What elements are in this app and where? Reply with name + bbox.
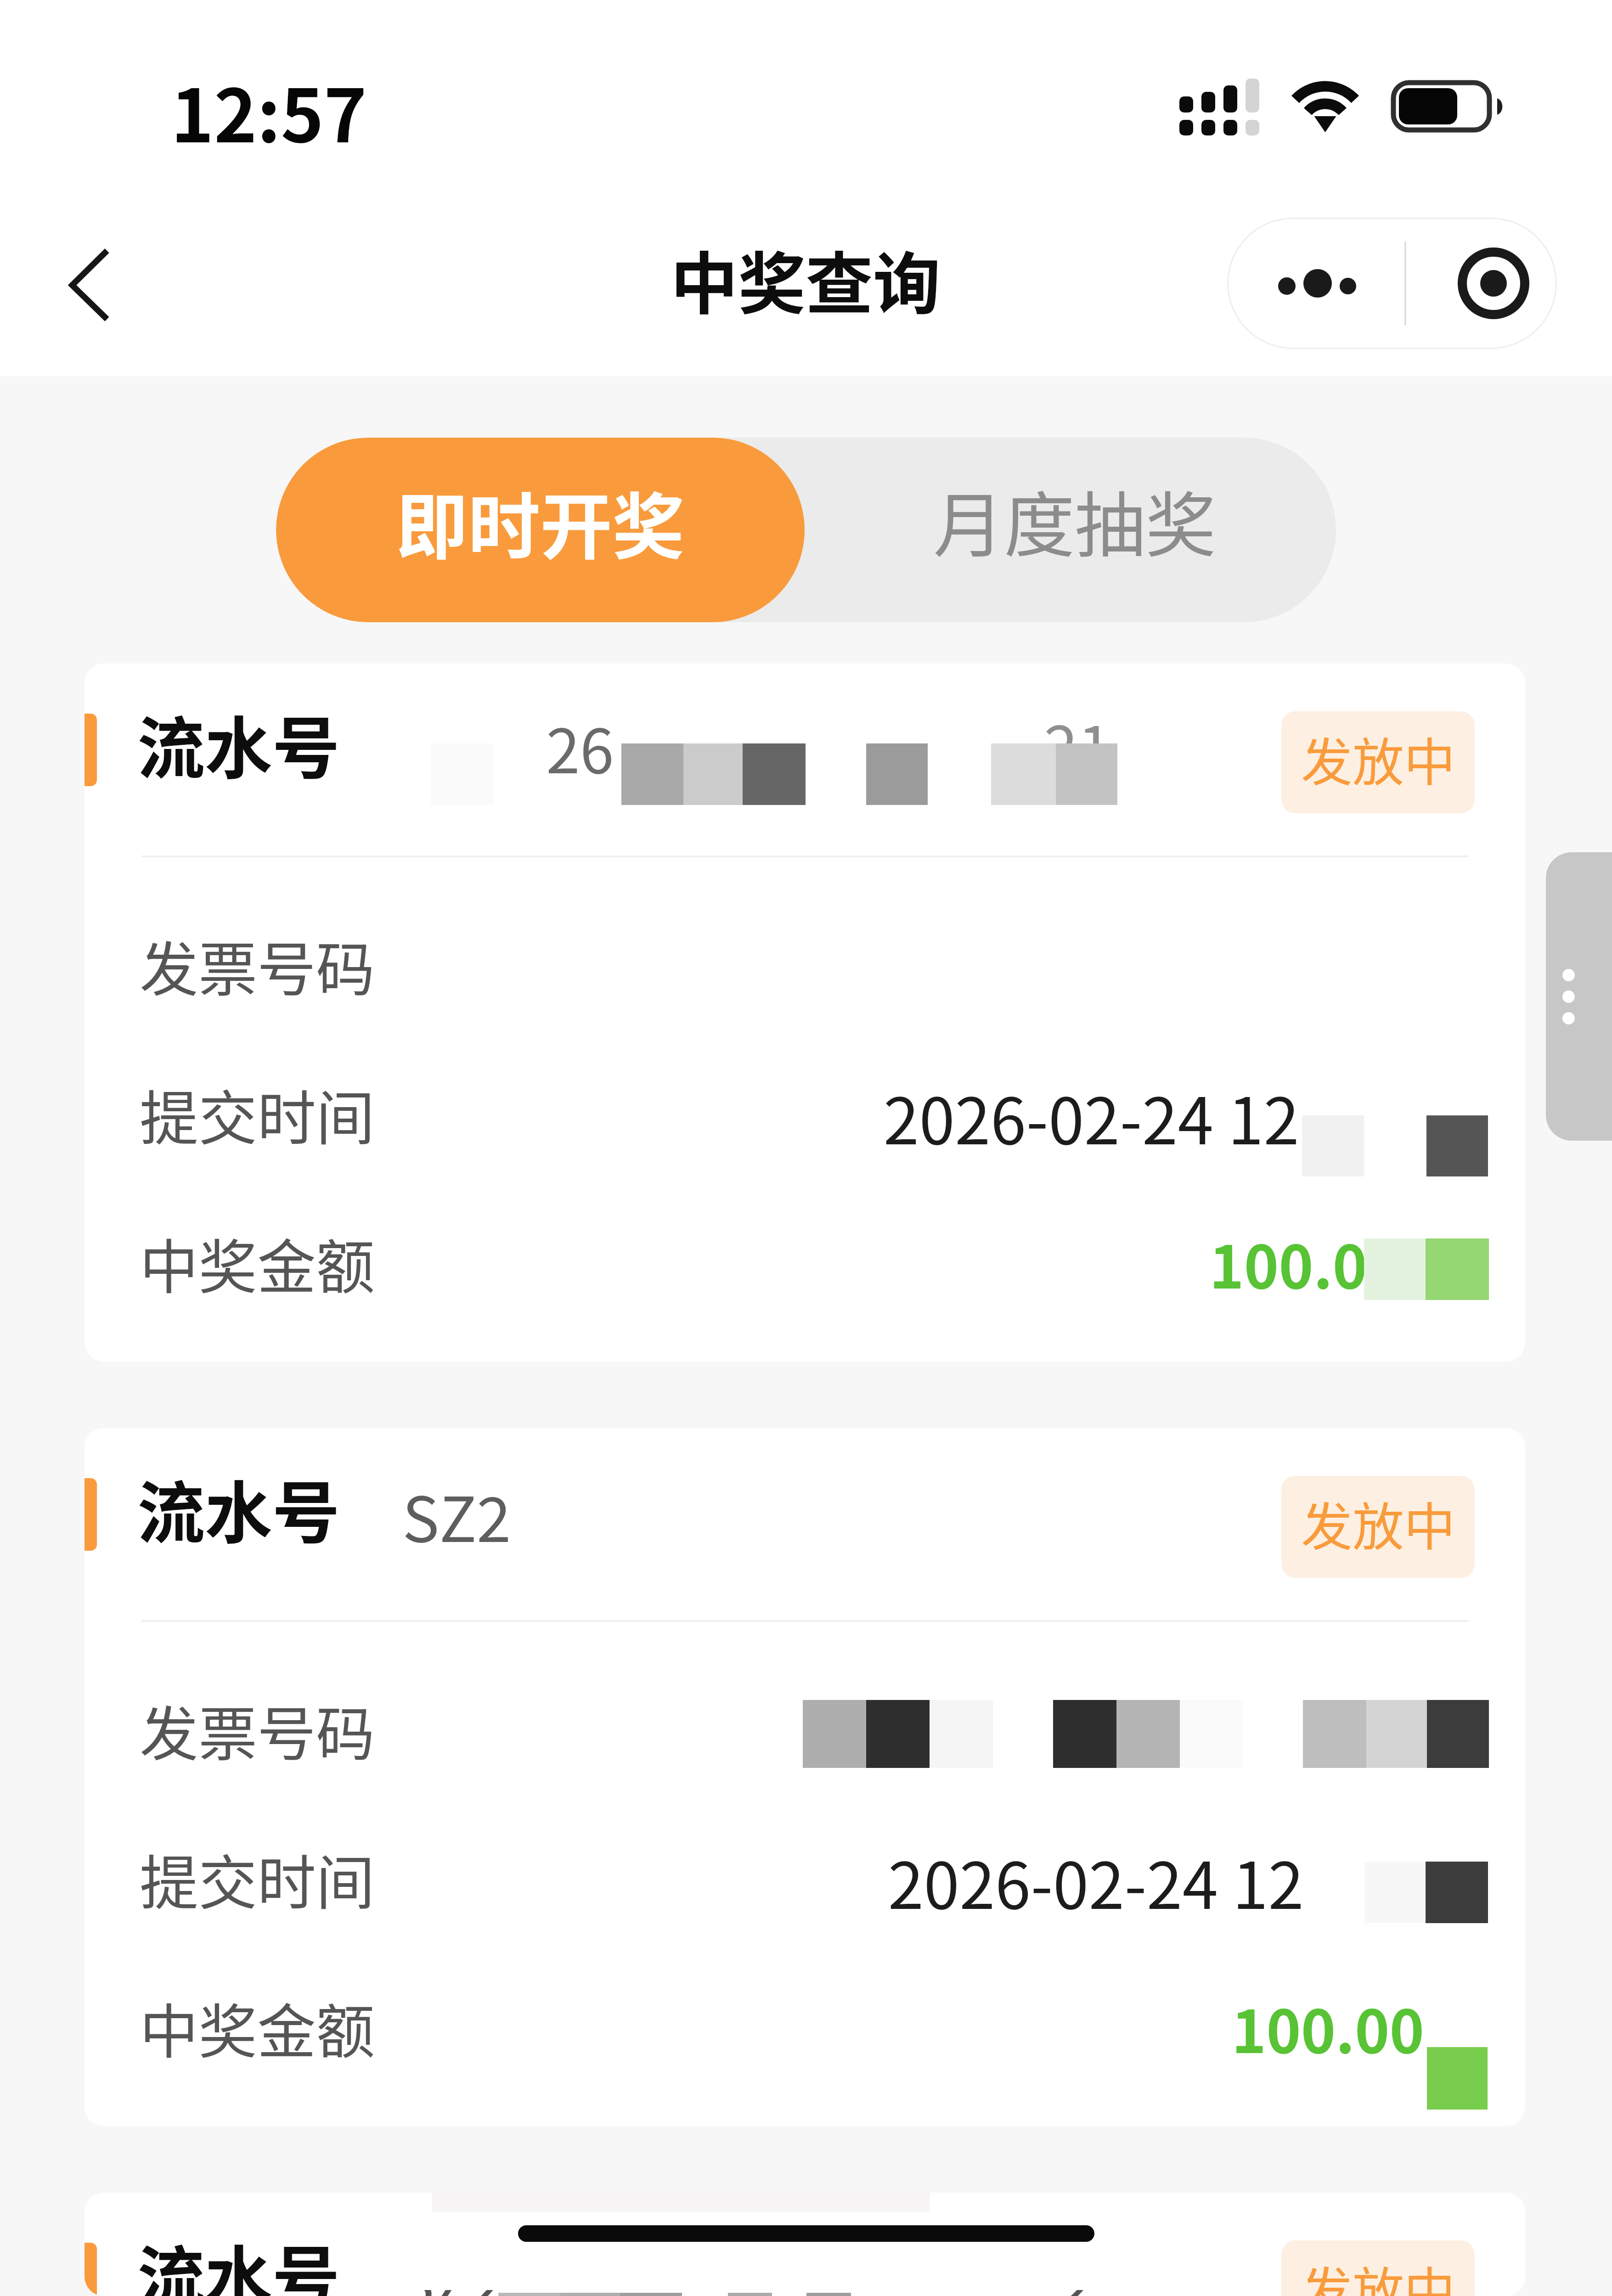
button[interactable]: Back: [28, 216, 147, 335]
staticText: 流水号: [137, 694, 340, 792]
staticText: 流水号: [137, 2223, 340, 2296]
staticText: 发放中: [1301, 2251, 1455, 2296]
button[interactable]: More options: [1227, 218, 1405, 349]
staticText: '2: [1048, 2232, 1099, 2296]
staticText: 2026-02-24 12: [477, 1835, 1304, 1928]
staticText: 流水号: [137, 1459, 340, 1557]
staticText: 2026-02-24 12: [473, 1070, 1299, 1163]
staticText: SZ2: [397, 2234, 506, 2296]
staticText: 中奖金额: [140, 1985, 375, 2070]
button[interactable]: Customer service: [1546, 852, 1612, 1141]
button[interactable]: 即时开奖: [276, 438, 805, 622]
staticText: 发放中: [1301, 721, 1455, 796]
button[interactable]: 流水号: [85, 2193, 1525, 2296]
staticText: 12:57: [171, 58, 367, 163]
staticText: 发票号码: [140, 923, 375, 1008]
staticText: 21: [1044, 700, 1112, 788]
staticText: 100.00: [597, 1985, 1424, 2070]
button[interactable]: 流水号: [85, 1428, 1525, 2126]
staticText: 中奖查询: [671, 230, 941, 327]
button[interactable]: 流水号: [85, 664, 1525, 1362]
staticText: 发放中: [1301, 1486, 1455, 1560]
staticText: 提交时间: [140, 1072, 375, 1157]
staticText: 即时开奖: [396, 469, 685, 574]
staticText: SZ2: [402, 1470, 511, 1559]
staticText: 发票号码: [140, 1688, 375, 1773]
staticText: 中奖金额: [140, 1221, 375, 1306]
staticText: 提交时间: [140, 1836, 375, 1921]
button[interactable]: 月度抽奖: [805, 438, 1336, 622]
staticText: 月度抽奖: [933, 469, 1217, 571]
staticText: 26: [546, 703, 614, 791]
staticText: 100.0: [541, 1221, 1367, 1306]
button[interactable]: Close mini program: [1405, 218, 1557, 349]
